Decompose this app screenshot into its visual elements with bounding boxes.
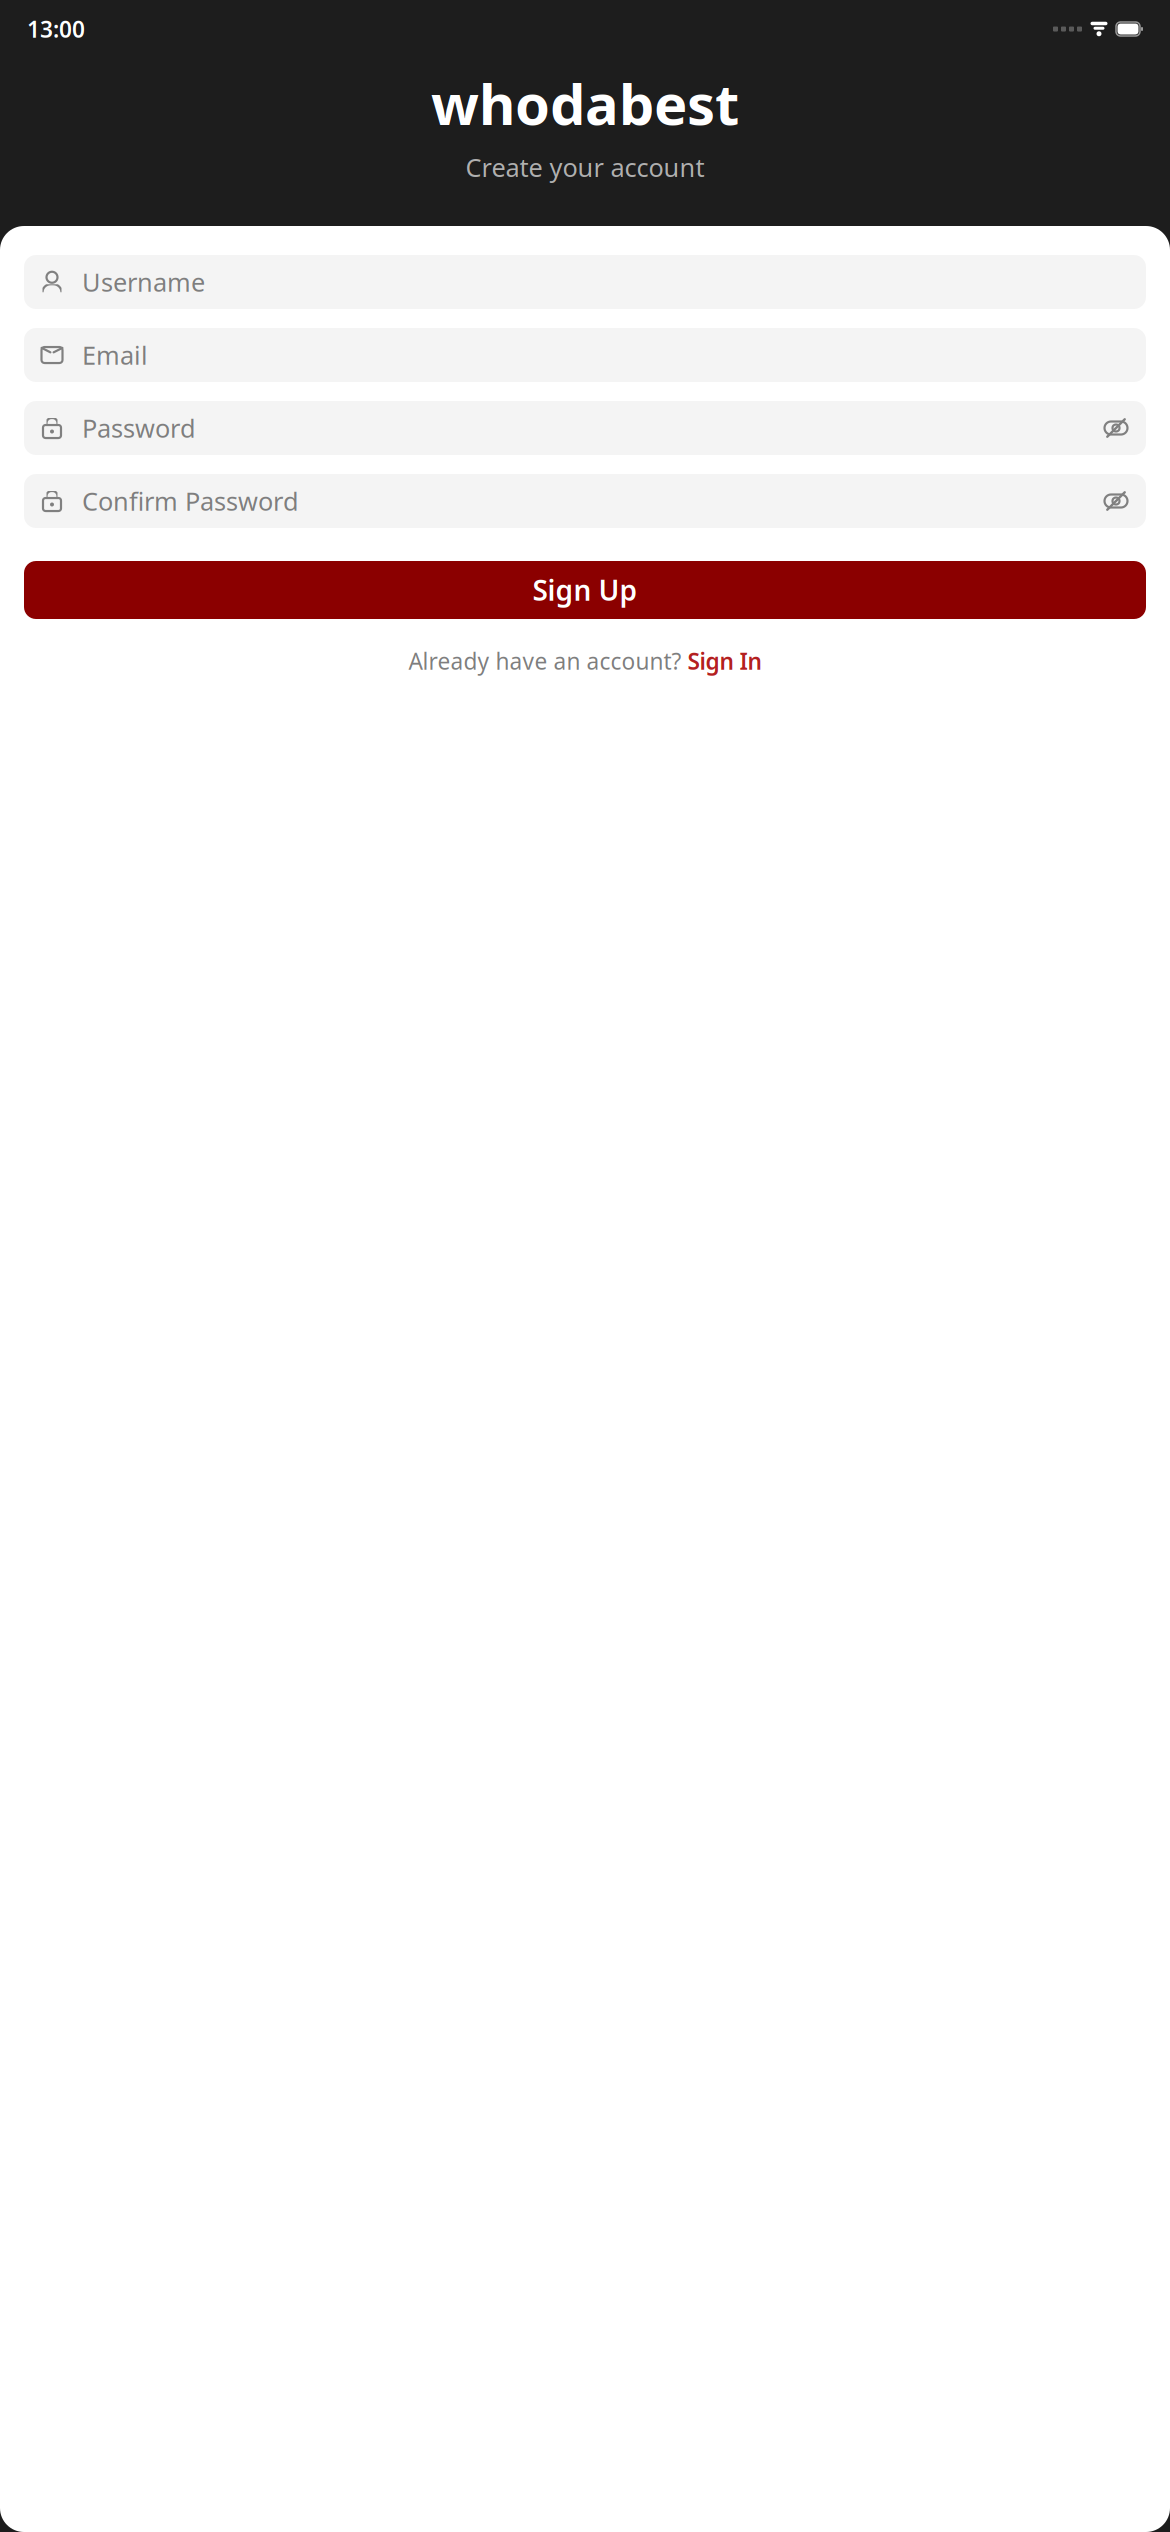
button[interactable]: Username (24, 255, 1146, 309)
button[interactable]: Sign Up (24, 561, 1146, 619)
staticText: Create your account (465, 150, 704, 184)
staticText: Sign In (687, 646, 761, 676)
staticText: Already have an account? (408, 646, 681, 676)
staticText: Password (82, 411, 196, 445)
staticText: Confirm Password (82, 484, 299, 518)
button[interactable]: Already have an account? (24, 640, 1146, 682)
staticText: 13:00 (27, 14, 85, 44)
button[interactable]: Email (24, 328, 1146, 382)
staticText: Username (82, 265, 205, 299)
staticText: whodabest (431, 66, 739, 140)
button[interactable]: Confirm Password (24, 474, 1146, 528)
staticText: Email (82, 338, 148, 372)
staticText: Sign Up (532, 571, 637, 609)
button[interactable]: Password (24, 401, 1146, 455)
